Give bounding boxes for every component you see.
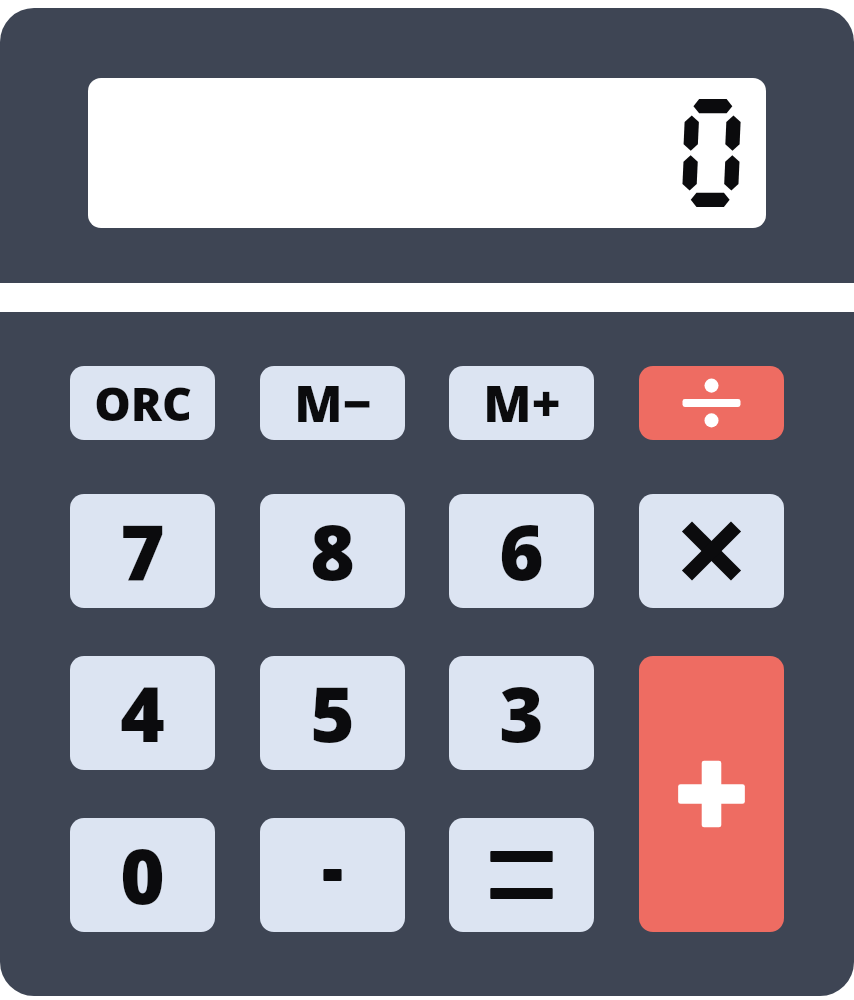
button[interactable]: 8 <box>260 494 405 608</box>
staticText: M− <box>294 369 372 437</box>
button[interactable]: Multiply <box>639 494 784 608</box>
button[interactable]: M− <box>260 366 405 440</box>
staticText: 7 <box>120 499 165 603</box>
staticText: 6 <box>499 499 544 603</box>
button[interactable]: Plus <box>639 656 784 932</box>
button[interactable]: ORC <box>70 366 215 440</box>
button[interactable]: M+ <box>449 366 594 440</box>
staticText: 4 <box>120 661 165 765</box>
button[interactable]: 6 <box>449 494 594 608</box>
staticText: ORC <box>94 372 192 435</box>
button[interactable]: Divide <box>639 366 784 440</box>
button[interactable]: 3 <box>449 656 594 770</box>
button[interactable]: Equals <box>449 818 594 932</box>
button[interactable]: 0 <box>70 818 215 932</box>
staticText: 3 <box>499 661 544 765</box>
button[interactable]: 7 <box>70 494 215 608</box>
button[interactable]: 5 <box>260 656 405 770</box>
staticText: 0 <box>120 823 165 927</box>
staticText: 8 <box>310 499 355 603</box>
button[interactable]: Minus <box>260 818 405 932</box>
staticText: M+ <box>483 369 561 437</box>
staticText: 5 <box>310 661 355 765</box>
button[interactable]: 4 <box>70 656 215 770</box>
